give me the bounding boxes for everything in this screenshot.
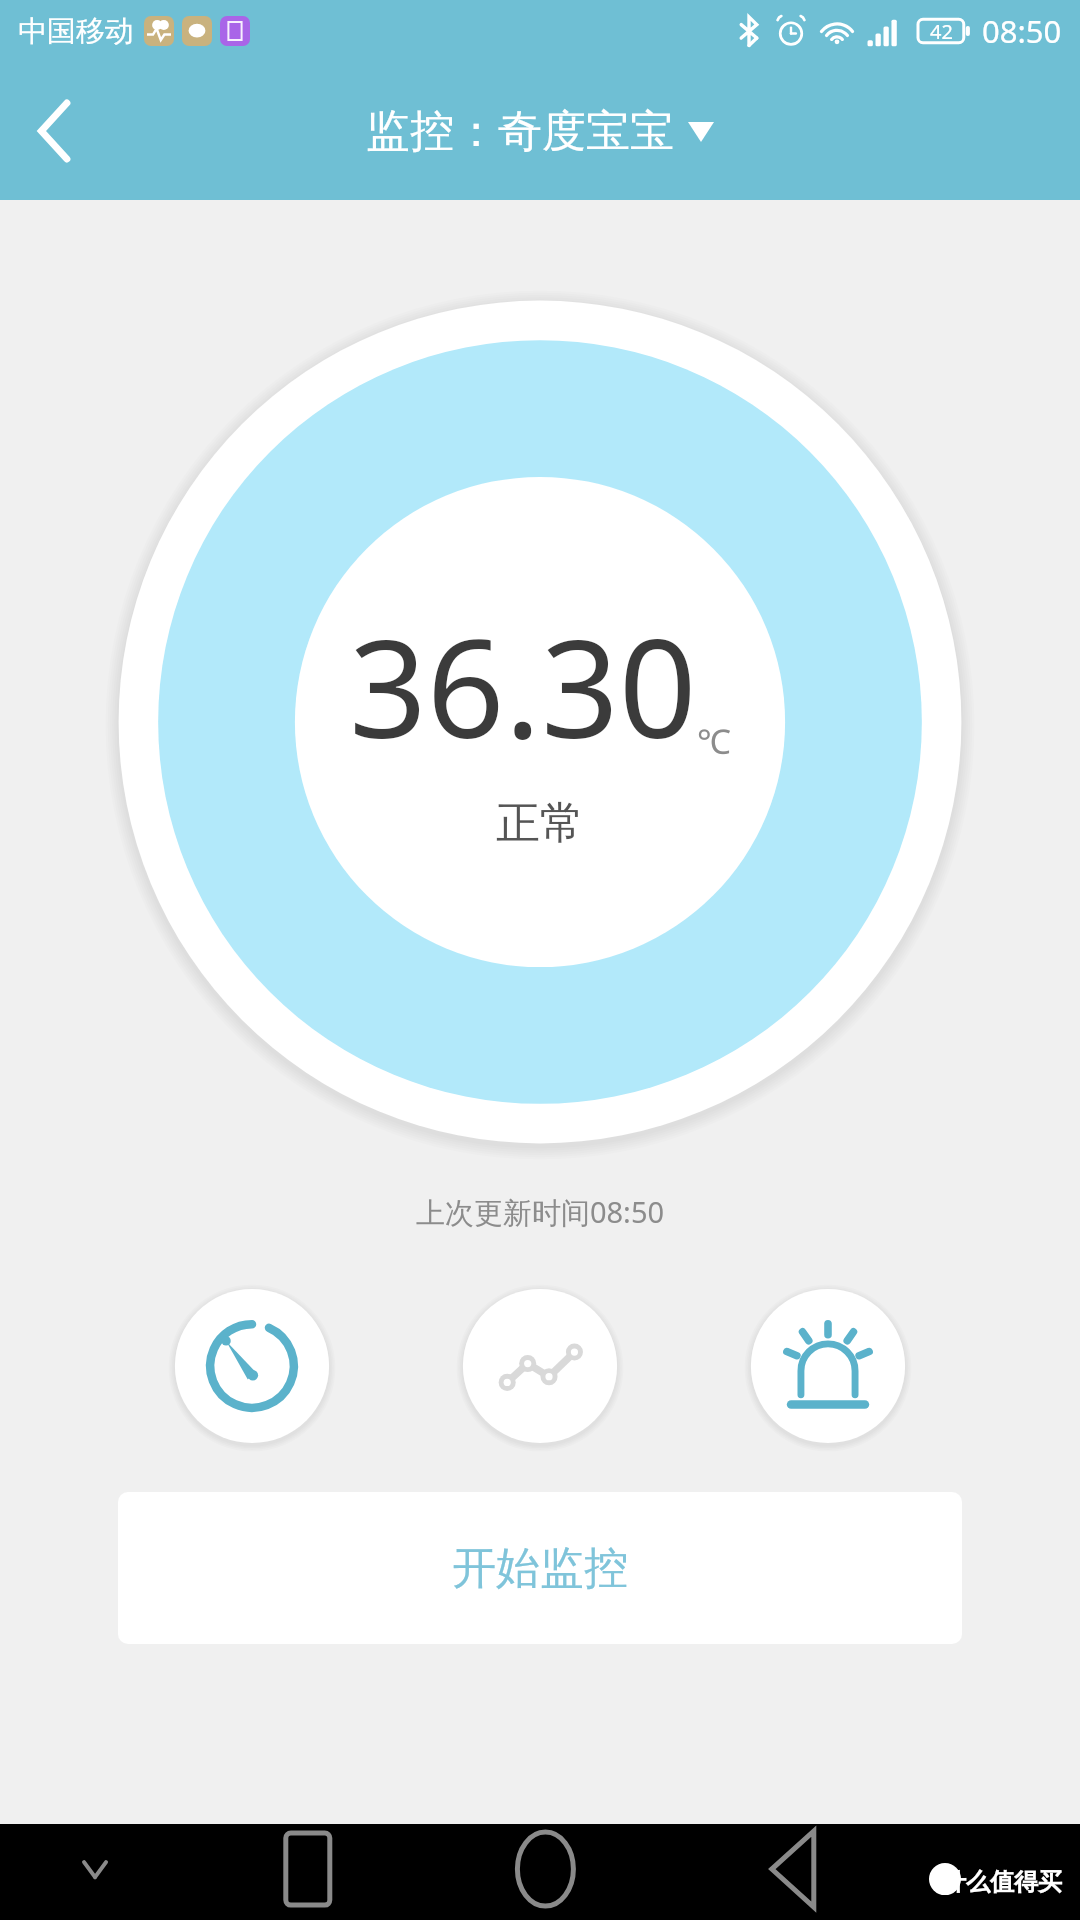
button[interactable]: History chart (458, 1284, 622, 1448)
button[interactable]: Back (0, 76, 110, 186)
staticText: 36.30 (349, 593, 697, 778)
button[interactable]: 开始监控 (118, 1492, 962, 1644)
staticText: 监控：奇度宝宝 (366, 104, 674, 159)
button[interactable]: 监控：奇度宝宝 (366, 104, 714, 159)
staticText: ℃ (697, 718, 731, 764)
staticText: 正常 (496, 796, 584, 851)
button[interactable]: Timer 10 minutes (170, 1284, 334, 1448)
staticText: 08:50 (982, 10, 1062, 52)
staticText: 开始监控 (452, 1541, 628, 1596)
staticText: 什么值得买 (942, 1867, 1062, 1897)
staticText: 中国移动 (18, 13, 134, 50)
button[interactable]: Alarm threshold 37.6 (746, 1284, 910, 1448)
staticText: 42 (930, 18, 953, 45)
staticText: 上次更新时间08:50 (0, 1192, 1080, 1232)
